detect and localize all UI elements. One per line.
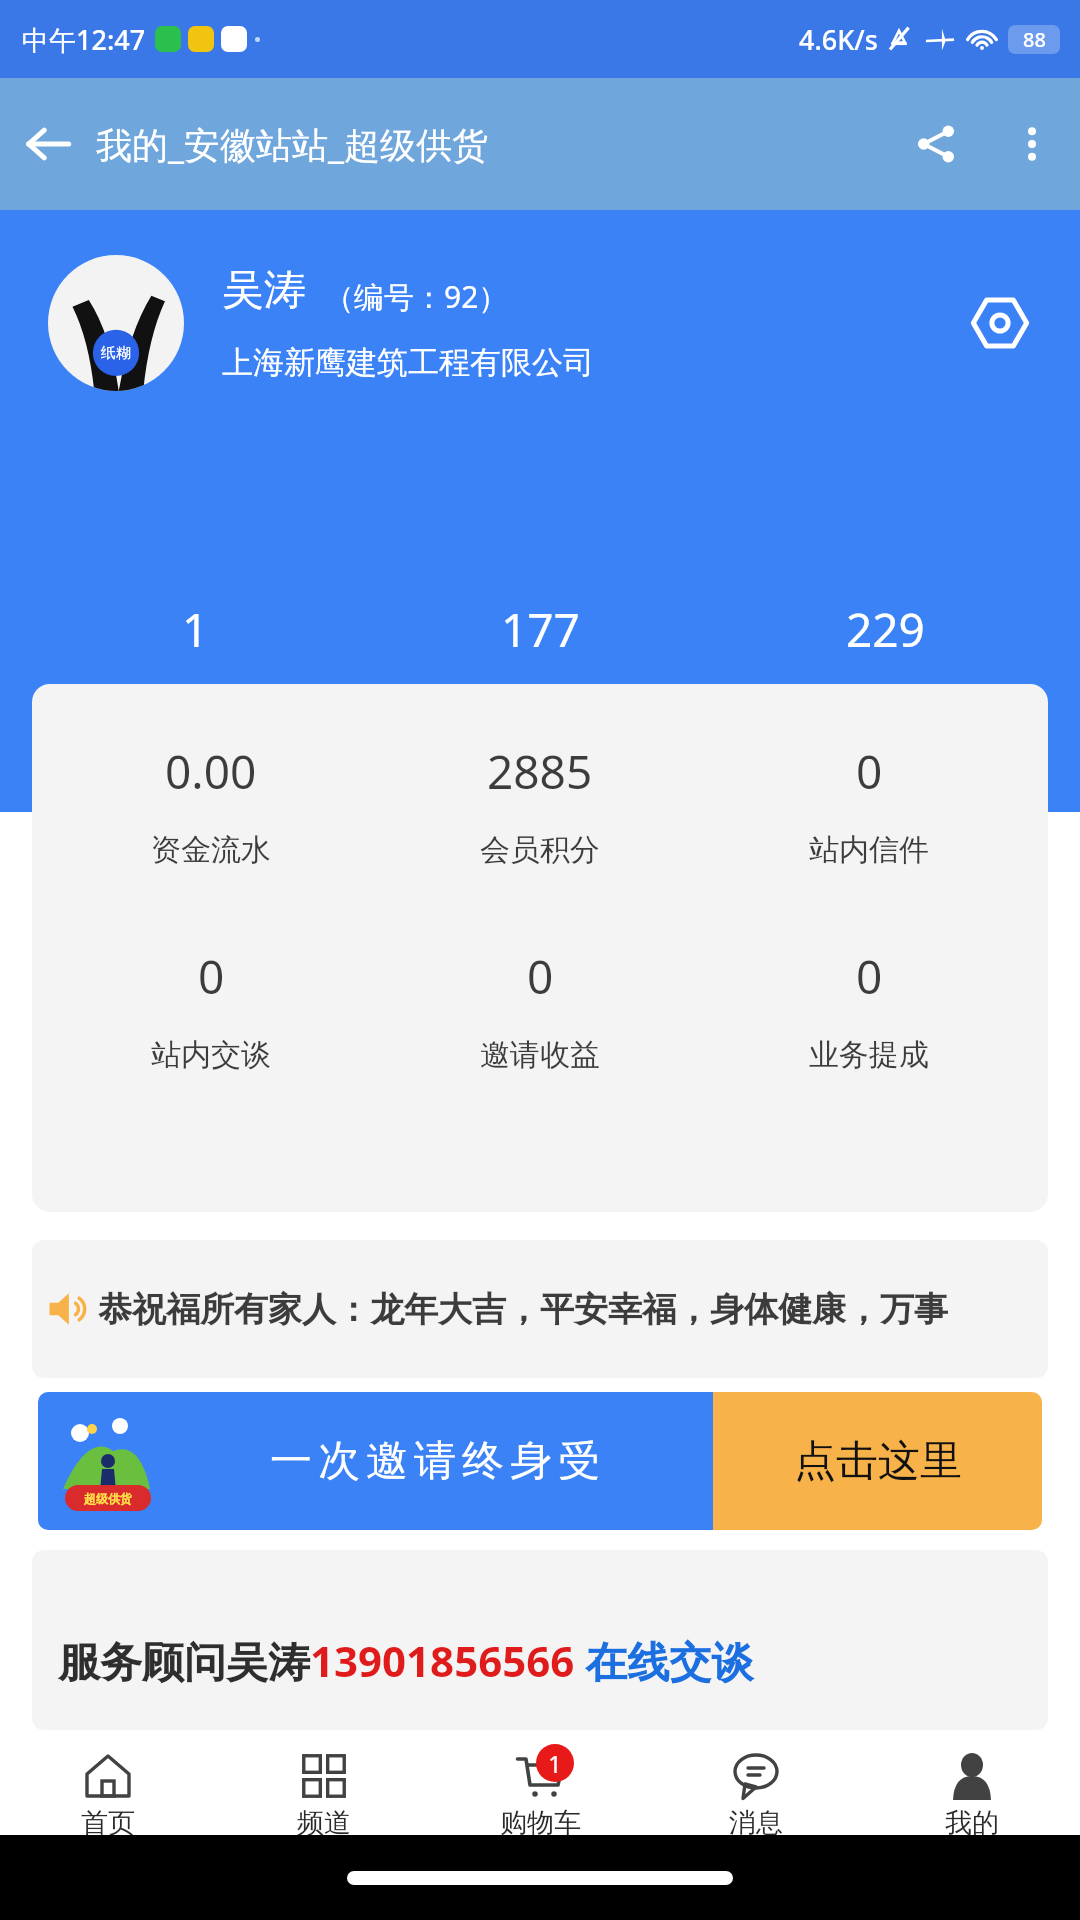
- staticText: 0: [198, 945, 225, 1008]
- button[interactable]: 0.00: [61, 736, 361, 873]
- staticText: 消息: [729, 1806, 783, 1835]
- button[interactable]: 0: [390, 941, 690, 1078]
- button[interactable]: 1: [432, 1750, 648, 1835]
- staticText: 购物车: [500, 1806, 581, 1835]
- staticText: 点击这里: [794, 1435, 962, 1488]
- staticText: 资金流水: [151, 831, 271, 869]
- staticText: 1: [548, 1747, 562, 1780]
- button[interactable]: 服务顾问吴涛13901856566 在线交谈: [32, 1550, 1048, 1730]
- button[interactable]: 消息: [648, 1750, 864, 1835]
- staticText: 229: [846, 598, 925, 661]
- button[interactable]: 纸糊: [48, 255, 184, 391]
- staticText: 上海新鹰建筑工程有限公司: [222, 343, 594, 382]
- staticText: 超级供货: [84, 1491, 132, 1506]
- staticText: 0: [527, 945, 554, 1008]
- staticText: 0.00: [165, 740, 257, 803]
- staticText: 纸糊: [101, 344, 131, 363]
- staticText: 2885: [487, 740, 593, 803]
- staticText: 我的_安徽站站_超级供货: [96, 120, 488, 169]
- button[interactable]: More options: [984, 96, 1080, 192]
- button[interactable]: 我的: [864, 1750, 1080, 1835]
- staticText: 我的: [945, 1806, 999, 1835]
- button[interactable]: 229: [735, 592, 1035, 734]
- staticText: 频道: [297, 1806, 351, 1835]
- button[interactable]: 2885: [390, 736, 690, 873]
- staticText: 服务顾问吴涛13901856566 在线交谈: [58, 1632, 754, 1689]
- staticText: 88: [1023, 26, 1046, 53]
- button[interactable]: 频道: [216, 1750, 432, 1835]
- staticText: 站内信件: [809, 831, 929, 869]
- button[interactable]: 首页: [0, 1750, 216, 1835]
- button[interactable]: Back: [0, 96, 96, 192]
- staticText: 恭祝福所有家人：龙年大吉，平安幸福，身体健康，万事: [98, 1288, 948, 1331]
- staticText: 1: [182, 598, 209, 661]
- button[interactable]: Settings: [960, 283, 1040, 363]
- staticText: 站内交谈: [151, 1036, 271, 1074]
- staticText: 吴涛: [222, 264, 306, 317]
- staticText: 邀请收益: [480, 1036, 600, 1074]
- button[interactable]: 0: [61, 941, 361, 1078]
- staticText: 4.6K/s: [799, 21, 878, 58]
- staticText: 177: [501, 598, 580, 661]
- staticText: 0: [856, 945, 883, 1008]
- staticText: 会员积分: [480, 831, 600, 869]
- button[interactable]: 1: [45, 592, 345, 734]
- staticText: 一次邀请终身受: [267, 1435, 603, 1488]
- button[interactable]: 0: [719, 736, 1019, 873]
- button[interactable]: 0: [719, 941, 1019, 1078]
- button[interactable]: 177: [390, 592, 690, 734]
- staticText: 业务提成: [809, 1036, 929, 1074]
- staticText: （编号：92）: [324, 276, 509, 317]
- staticText: 首页: [81, 1806, 135, 1835]
- staticText: 中午12:47: [22, 21, 146, 58]
- button[interactable]: Share: [888, 96, 984, 192]
- button[interactable]: 恭祝福所有家人：龙年大吉，平安幸福，身体健康，万事: [32, 1240, 1048, 1378]
- button[interactable]: 超级供货: [38, 1392, 1042, 1530]
- staticText: 0: [856, 740, 883, 803]
